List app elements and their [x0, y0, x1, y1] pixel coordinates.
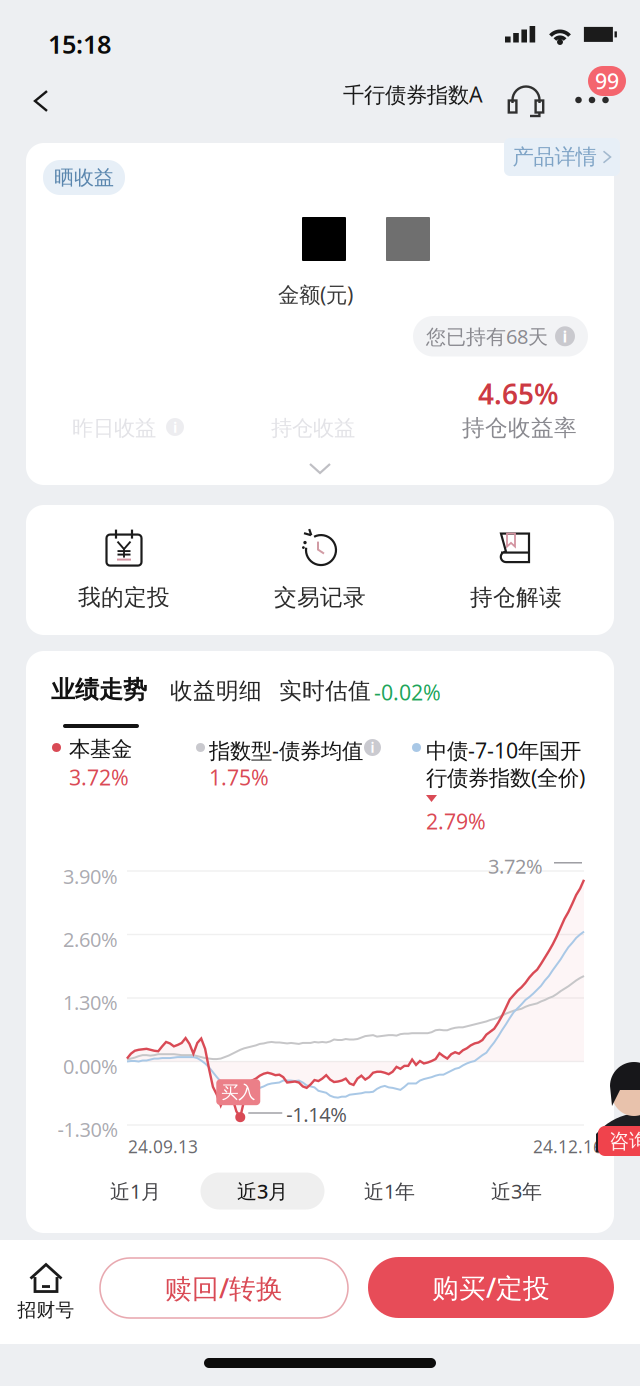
- staticText: 赎回/转换: [165, 1270, 283, 1306]
- staticText: 业绩走势: [51, 675, 147, 704]
- button[interactable]: 收益明细: [170, 677, 262, 705]
- button[interactable]: 实时估值: [279, 677, 371, 705]
- button[interactable]: Customer service: [500, 74, 552, 126]
- staticText: 近3年: [491, 1178, 542, 1204]
- staticText: 近1月: [110, 1178, 161, 1204]
- staticText: -0.02%: [374, 678, 441, 706]
- staticText: 3.72%: [69, 763, 129, 791]
- staticText: 持仓收益: [271, 415, 355, 441]
- button[interactable]: 招财号: [0, 1252, 92, 1332]
- button[interactable]: Consult an advisor: [596, 1058, 640, 1154]
- staticText: 3.90%: [63, 863, 118, 890]
- staticText: 行债券指数(全价): [426, 763, 585, 791]
- button[interactable]: 购买/定投: [368, 1257, 614, 1318]
- staticText: 千行债券指数A: [343, 80, 483, 108]
- staticText: i: [370, 739, 374, 756]
- staticText: 24.09.13: [128, 1135, 198, 1158]
- staticText: -1.14%: [286, 1101, 347, 1128]
- staticText: 2.79%: [426, 807, 486, 835]
- staticText: 15:18: [48, 27, 111, 61]
- button[interactable]: 业绩走势: [51, 675, 147, 704]
- button[interactable]: 产品详情: [504, 138, 620, 176]
- staticText: 我的定投: [78, 584, 170, 611]
- staticText: i: [173, 417, 177, 437]
- staticText: 0.00%: [63, 1053, 118, 1080]
- staticText: 咨询: [609, 1129, 640, 1153]
- button[interactable]: 晒收益: [43, 160, 125, 195]
- staticText: 晒收益: [54, 165, 114, 190]
- staticText: 1.30%: [63, 989, 118, 1016]
- staticText: 中债-7-10年国开: [426, 736, 581, 764]
- staticText: 99: [595, 67, 619, 95]
- staticText: 指数型-债券均值: [209, 736, 363, 764]
- staticText: 24.12.16: [533, 1135, 603, 1158]
- staticText: i: [562, 326, 567, 347]
- staticText: 1.75%: [209, 763, 269, 791]
- button[interactable]: Back: [14, 74, 68, 128]
- staticText: 招财号: [17, 1298, 74, 1321]
- staticText: 产品详情: [512, 144, 596, 170]
- button[interactable]: 近1月: [73, 1172, 197, 1209]
- staticText: 交易记录: [274, 584, 366, 611]
- staticText: 购买/定投: [432, 1270, 550, 1305]
- staticText: 实时估值: [279, 677, 371, 705]
- button[interactable]: 近3月: [200, 1172, 324, 1209]
- staticText: 近1年: [364, 1178, 415, 1204]
- staticText: 持仓解读: [470, 584, 562, 611]
- button[interactable]: 赎回/转换: [100, 1258, 348, 1318]
- button[interactable]: 我的定投: [26, 505, 222, 635]
- staticText: 4.65%: [478, 375, 559, 412]
- staticText: -1.30%: [57, 1116, 118, 1143]
- staticText: 3.72%: [488, 853, 543, 879]
- staticText: 买入: [221, 1081, 255, 1103]
- staticText: 持仓收益率: [462, 414, 577, 442]
- staticText: 金额(元): [278, 280, 353, 308]
- button[interactable]: 交易记录: [222, 505, 418, 635]
- button[interactable]: More: [564, 74, 620, 126]
- button[interactable]: 近1年: [327, 1172, 451, 1209]
- button[interactable]: 近3年: [454, 1172, 578, 1209]
- staticText: 近3月: [237, 1178, 288, 1204]
- staticText: 本基金: [69, 736, 132, 762]
- button[interactable]: 持仓解读: [418, 505, 614, 635]
- staticText: 昨日收益: [72, 415, 156, 441]
- staticText: 收益明细: [170, 677, 262, 705]
- staticText: 您已持有68天: [426, 323, 548, 350]
- staticText: 2.60%: [63, 926, 118, 953]
